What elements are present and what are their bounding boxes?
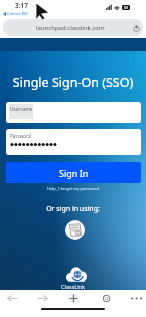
button[interactable]: More (128, 291, 144, 305)
staticText: Password (10, 133, 31, 139)
staticText: Username (10, 106, 33, 112)
button[interactable]: Password (6, 129, 141, 155)
staticText: launchpad.classlink.com (36, 24, 105, 32)
button[interactable]: Forward (35, 291, 51, 305)
staticText: ClassLink (0, 283, 146, 290)
button[interactable]: Conroe ISD (3, 11, 29, 16)
button[interactable]: New tab (68, 293, 78, 303)
staticText: Sign In (59, 167, 89, 179)
other: Share (134, 25, 139, 31)
staticText: Or sign in using: (0, 204, 146, 214)
staticText: 14 (104, 296, 109, 301)
staticText: Conroe ISD (7, 11, 29, 16)
button[interactable]: Sign In (6, 162, 141, 183)
button[interactable]: Help, I forgot my password (0, 186, 146, 192)
button[interactable]: Tabs (100, 292, 112, 304)
staticText: 69 (124, 5, 129, 10)
staticText: 3:17 (15, 1, 28, 10)
button[interactable]: Sign in with QuickCard (65, 220, 85, 240)
button[interactable]: Username (6, 102, 141, 123)
button[interactable]: Back (4, 291, 20, 305)
staticText: Single Sign-On (SSO) (0, 74, 146, 91)
button[interactable]: launchpad.classlink.com (3, 19, 143, 36)
